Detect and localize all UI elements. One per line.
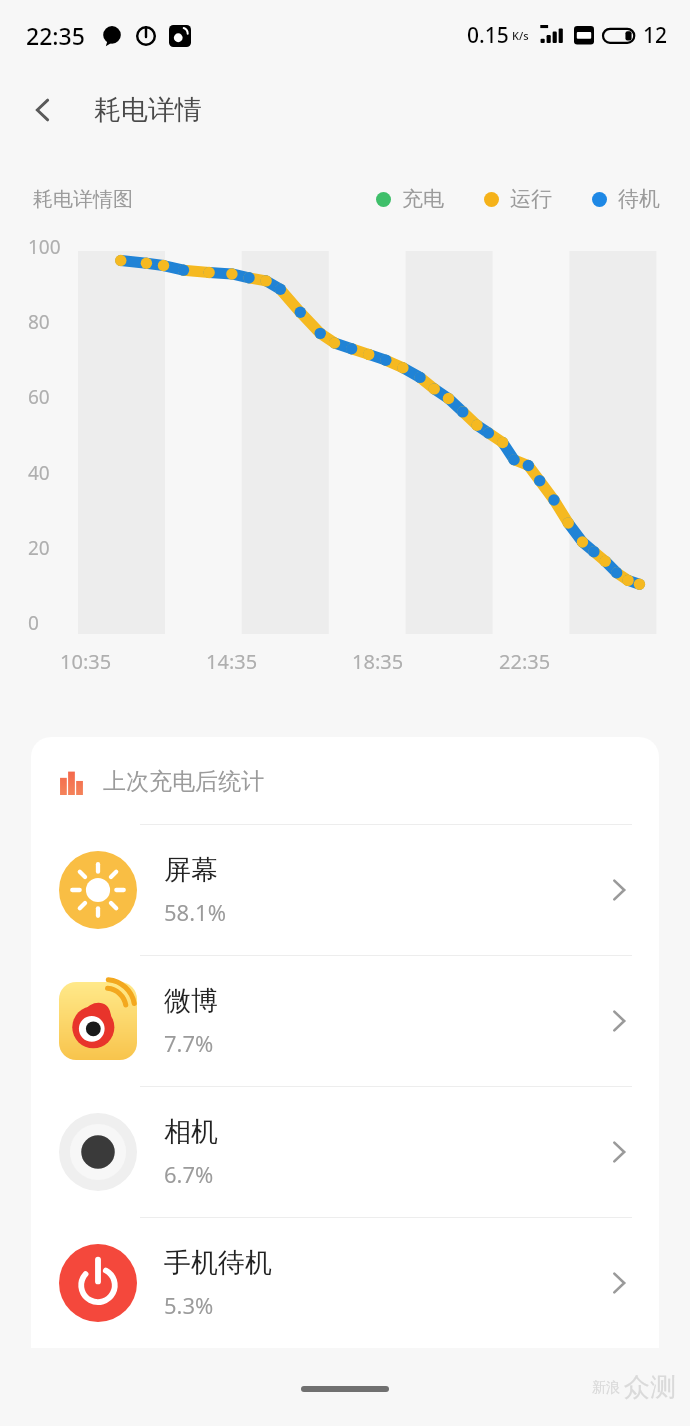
button[interactable]: 相机 bbox=[31, 1087, 659, 1217]
staticText: K/s bbox=[512, 28, 529, 43]
staticText: 7.7% bbox=[164, 1028, 214, 1058]
staticText: 14:35 bbox=[206, 648, 258, 675]
staticText: 新浪 bbox=[592, 1379, 620, 1397]
staticText: 22:35 bbox=[26, 20, 85, 51]
staticText: 20 bbox=[28, 535, 50, 559]
staticText: 18:35 bbox=[352, 648, 404, 675]
staticText: 耗电详情 bbox=[94, 93, 202, 127]
staticText: 22:35 bbox=[499, 648, 551, 675]
staticText: 40 bbox=[28, 460, 50, 484]
staticText: 待机 bbox=[618, 186, 660, 212]
staticText: 100 bbox=[28, 234, 61, 258]
staticText: 12 bbox=[643, 21, 668, 50]
button[interactable]: Back bbox=[14, 81, 72, 139]
staticText: 0 bbox=[28, 610, 39, 634]
staticText: 上次充电后统计 bbox=[103, 767, 264, 796]
staticText: 6.7% bbox=[164, 1159, 214, 1189]
staticText: 充电 bbox=[402, 186, 444, 212]
staticText: 0.15 bbox=[467, 21, 509, 50]
button[interactable]: 微博 bbox=[31, 956, 659, 1086]
button[interactable]: 手机待机 bbox=[31, 1218, 659, 1348]
button[interactable]: 屏幕 bbox=[31, 825, 659, 955]
staticText: 微博 bbox=[164, 984, 218, 1018]
staticText: 10:35 bbox=[60, 648, 112, 675]
staticText: 80 bbox=[28, 309, 50, 333]
staticText: 耗电详情图 bbox=[33, 187, 133, 212]
staticText: 手机待机 bbox=[164, 1246, 272, 1280]
staticText: 屏幕 bbox=[164, 853, 218, 887]
staticText: 5.3% bbox=[164, 1290, 214, 1320]
staticText: 相机 bbox=[164, 1115, 218, 1149]
staticText: 60 bbox=[28, 384, 50, 408]
staticText: 众测 bbox=[624, 1371, 676, 1404]
staticText: 58.1% bbox=[164, 897, 226, 927]
staticText: 运行 bbox=[510, 186, 552, 212]
